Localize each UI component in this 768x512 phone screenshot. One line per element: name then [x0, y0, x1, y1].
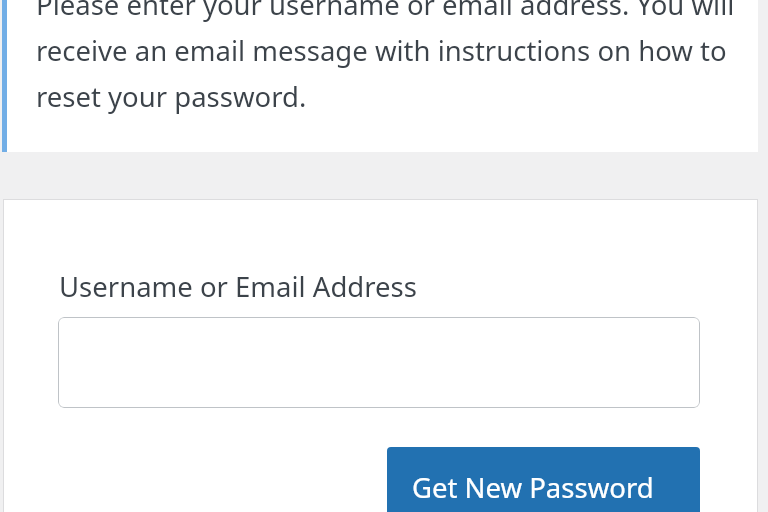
button[interactable]: Username or Email Address input field [58, 317, 700, 408]
button[interactable]: Get New Password [387, 447, 700, 512]
staticText: Please enter your username or email addr… [36, 0, 736, 115]
staticText: Username or Email Address [59, 268, 417, 305]
staticText: Get New Password [412, 469, 654, 506]
